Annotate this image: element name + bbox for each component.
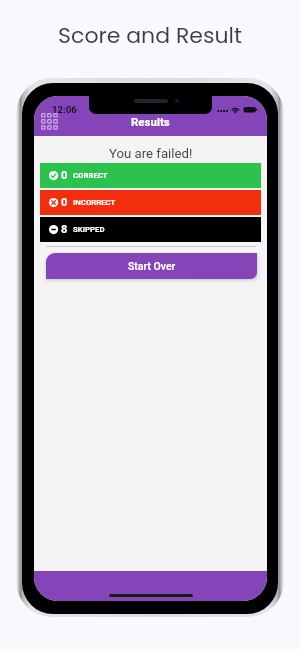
staticText: Score and Result [0, 20, 300, 51]
button[interactable]: Apps [41, 113, 59, 130]
staticText: Results [131, 115, 170, 128]
staticText: SKIPPED [73, 225, 105, 234]
staticText: 0 [61, 169, 68, 182]
staticText: 8 [61, 223, 68, 236]
staticText: 0 [61, 196, 68, 209]
staticText: 12:06 [52, 104, 77, 115]
staticText: INCORRECT [73, 198, 116, 207]
button[interactable]: 0 [40, 190, 261, 215]
staticText: Start Over [128, 260, 176, 272]
button[interactable]: Start Over [46, 253, 257, 279]
button[interactable]: 8 [40, 217, 261, 242]
button[interactable]: 0 [40, 163, 261, 188]
staticText: You are failed! [109, 146, 193, 161]
staticText: CORRECT [73, 171, 108, 180]
